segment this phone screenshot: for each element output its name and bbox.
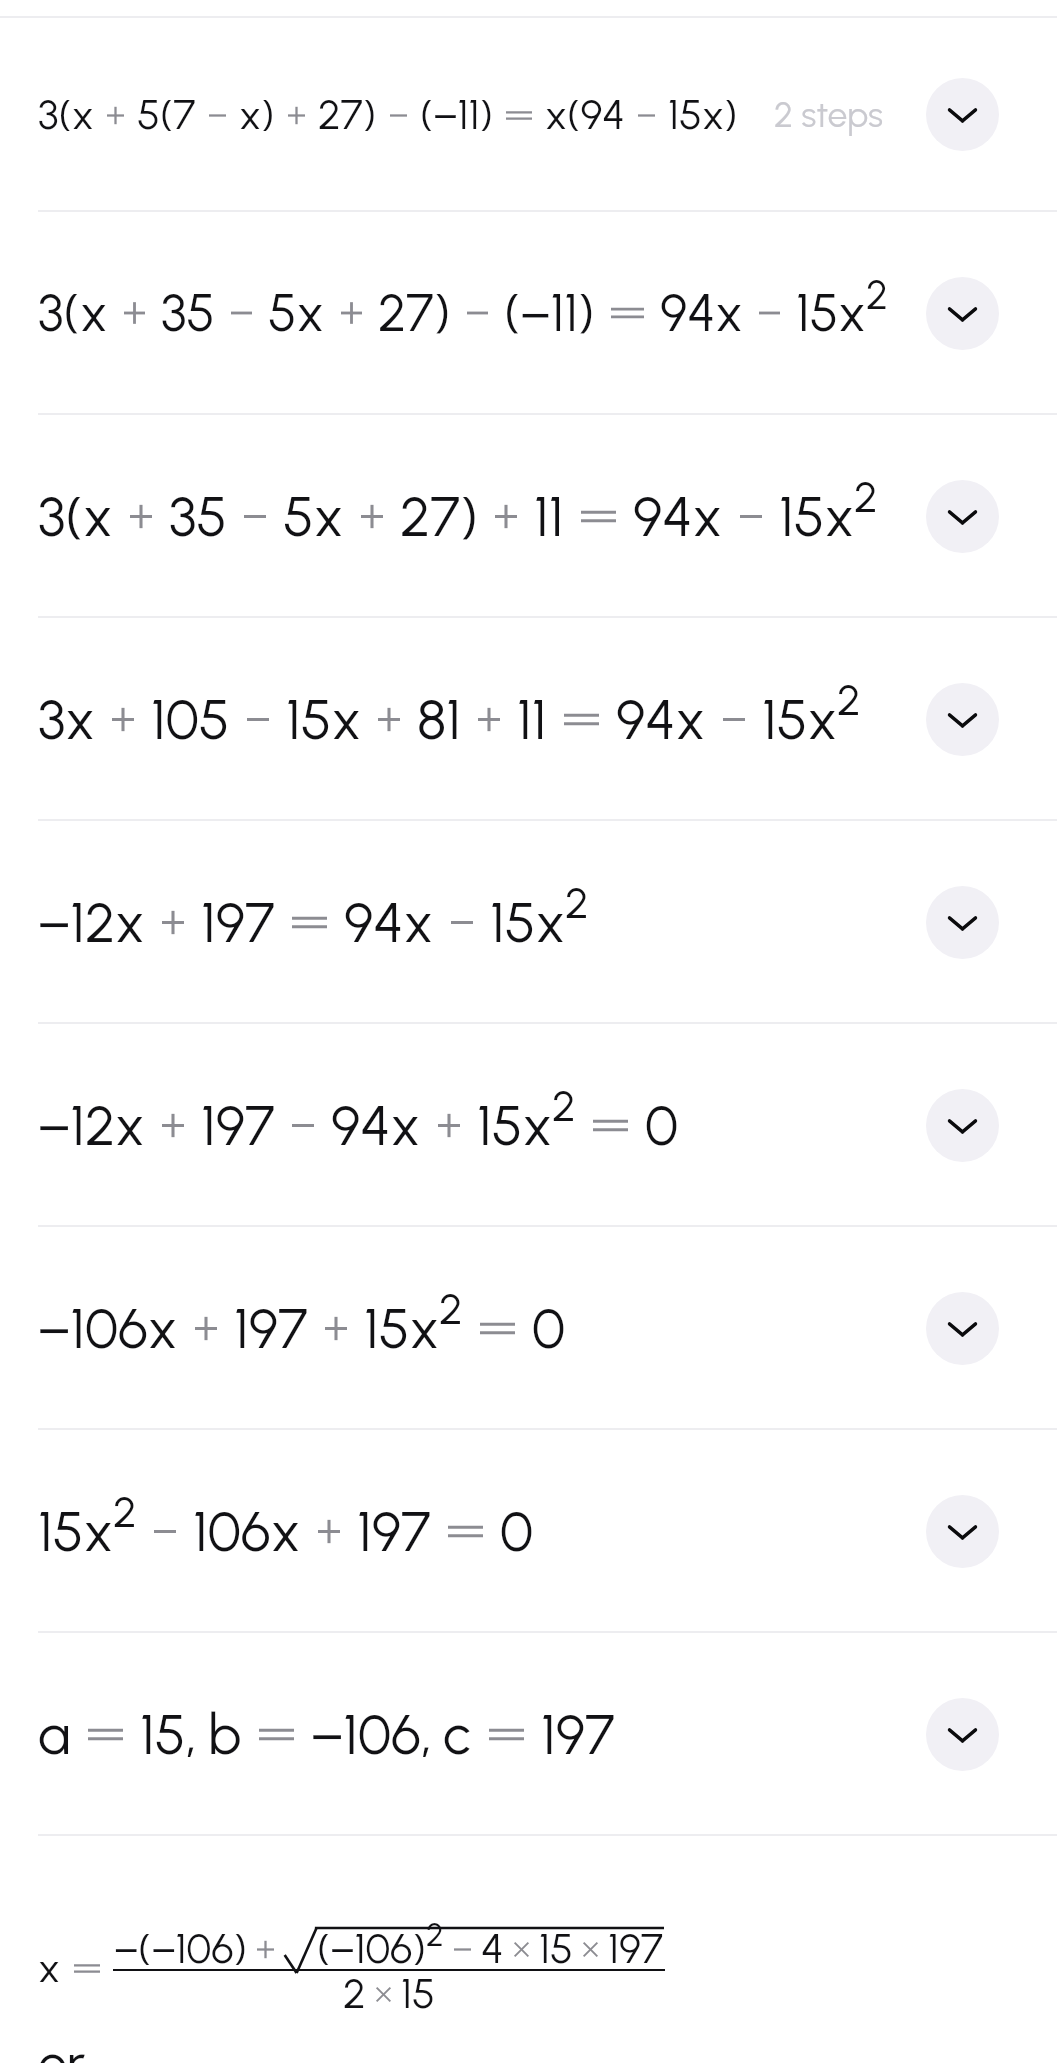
staticText: 15 (401, 1969, 435, 2019)
staticText: 5(7 (137, 90, 196, 140)
staticText: 94x (633, 483, 723, 550)
button[interactable]: Expand step (926, 886, 999, 959)
button[interactable]: Expand step (926, 78, 999, 151)
staticText: 0 (532, 1295, 566, 1362)
staticText: 5x (268, 282, 325, 344)
staticText: 27) (318, 90, 377, 140)
staticText: 105 (151, 686, 230, 753)
button[interactable]: 3x (0, 618, 1057, 820)
staticText: 2 (439, 1283, 463, 1335)
staticText: 2 (866, 271, 888, 319)
staticText: 35 (169, 483, 227, 550)
button[interactable]: 3(x (0, 18, 1057, 211)
staticText: 35 (161, 282, 215, 344)
staticText: 15x (490, 889, 565, 956)
staticText: 197 (357, 1498, 431, 1565)
staticText: 3(x (38, 483, 113, 550)
staticText: 15x) (668, 90, 738, 140)
staticText: 15x (779, 483, 854, 550)
button[interactable]: Expand step (926, 683, 999, 756)
button[interactable]: a (0, 1633, 1057, 1835)
staticText: c (443, 1701, 472, 1768)
staticText: a (38, 1701, 71, 1768)
staticText: x) (239, 90, 275, 140)
staticText: or (38, 2032, 86, 2063)
staticText: (−11) (420, 90, 493, 140)
button[interactable]: −12x (0, 1024, 1057, 1226)
staticText: 106x (193, 1498, 301, 1565)
button[interactable]: x (0, 1836, 1057, 2063)
staticText: 197 (234, 1295, 308, 1362)
staticText: 3(x (38, 90, 94, 140)
button[interactable]: −12x (0, 821, 1057, 1023)
staticText: 11 (517, 686, 547, 753)
staticText: 3x (38, 686, 95, 753)
button[interactable]: Expand step (926, 1698, 999, 1771)
staticText: 15 (539, 1924, 573, 1974)
staticText: 197 (201, 889, 275, 956)
staticText: 2 steps (774, 94, 883, 136)
staticText: b (208, 1701, 242, 1768)
staticText: −106, (311, 1701, 432, 1768)
staticText: 197 (201, 1092, 275, 1159)
staticText: 2 (854, 471, 878, 523)
staticText: 2 (343, 1969, 366, 2019)
staticText: 0 (645, 1092, 679, 1159)
staticText: −(−106) (114, 1924, 247, 1974)
staticText: (−11) (504, 282, 595, 344)
button[interactable]: Expand step (926, 1089, 999, 1162)
staticText: 15x (762, 686, 837, 753)
staticText: 0 (500, 1498, 534, 1565)
staticText: 15, (140, 1701, 197, 1768)
staticText: 2 (837, 674, 861, 726)
button[interactable]: −106x (0, 1227, 1057, 1429)
button[interactable]: Expand step (926, 277, 999, 350)
staticText: (−106) (317, 1924, 426, 1974)
staticText: −106x (38, 1295, 178, 1362)
staticText: 81 (417, 686, 461, 753)
staticText: 15x (364, 1295, 439, 1362)
button[interactable]: 15x (0, 1430, 1057, 1632)
staticText: 94x (331, 1092, 421, 1159)
staticText: −12x (38, 1092, 145, 1159)
staticText: 11 (534, 483, 564, 550)
staticText: 197 (541, 1701, 615, 1768)
staticText: 2 (552, 1080, 576, 1132)
staticText: 2 (426, 1915, 444, 1954)
staticText: 15x (477, 1092, 552, 1159)
staticText: −12x (38, 889, 145, 956)
button[interactable]: 3(x (0, 212, 1057, 414)
staticText: 3(x (38, 282, 108, 344)
staticText: 197 (608, 1924, 664, 1974)
button[interactable]: 3(x (0, 415, 1057, 617)
staticText: 4 (481, 1924, 504, 1974)
staticText: 2 (113, 1486, 137, 1538)
staticText: x (38, 1943, 61, 1993)
staticText: 94x (344, 889, 434, 956)
staticText: 15x (38, 1498, 113, 1565)
staticText: x(94 (545, 90, 625, 140)
button[interactable]: Expand step (926, 1292, 999, 1365)
staticText: 27) (400, 483, 478, 550)
staticText: 27) (378, 282, 451, 344)
button[interactable]: Expand step (926, 480, 999, 553)
staticText: 5x (283, 483, 344, 550)
staticText: 94x (616, 686, 706, 753)
button[interactable]: Expand step (926, 1495, 999, 1568)
staticText: 15x (286, 686, 361, 753)
staticText: 94x (660, 282, 743, 344)
staticText: 2 (565, 877, 589, 929)
staticText: 15x (796, 282, 866, 344)
